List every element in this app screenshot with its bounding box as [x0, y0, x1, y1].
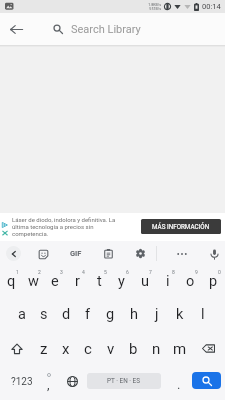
button[interactable]: s	[33, 299, 55, 332]
staticText: q	[7, 273, 16, 290]
button[interactable]: Change language	[60, 365, 85, 398]
button[interactable]: More options	[174, 246, 189, 261]
button[interactable]: Clipboard	[101, 246, 116, 261]
button[interactable]: z	[33, 332, 55, 365]
button[interactable]: k	[168, 299, 191, 332]
staticText: h	[130, 306, 138, 323]
staticText: i	[166, 273, 170, 290]
button[interactable]: h	[122, 299, 145, 332]
staticText: g	[106, 306, 115, 323]
button[interactable]: x	[55, 332, 77, 365]
staticText: Láser de diodo, indolora y definitiva. L…	[12, 216, 126, 237]
staticText: p	[209, 273, 218, 290]
staticText: b	[129, 340, 138, 358]
staticText: o	[186, 273, 195, 290]
staticText: a	[18, 306, 26, 323]
button[interactable]: 0	[202, 266, 225, 299]
button[interactable]: .	[166, 365, 192, 398]
button[interactable]: Search Library	[53, 13, 141, 45]
staticText: ?123	[11, 376, 33, 388]
staticText: MÁS INFORMACIÓN	[152, 223, 210, 230]
button[interactable]: Settings	[133, 246, 148, 261]
staticText: s	[40, 306, 48, 323]
button[interactable]: g	[99, 299, 122, 332]
staticText: j	[155, 306, 159, 323]
staticText: f	[85, 306, 91, 323]
staticText: 1.8KB/s 551B/s	[148, 3, 161, 11]
button[interactable]: 2	[22, 266, 44, 299]
button[interactable]: v	[99, 332, 122, 365]
staticText: PT · EN · ES	[107, 377, 141, 385]
button[interactable]: Search	[192, 372, 221, 389]
button[interactable]: PT · EN · ES	[87, 373, 161, 389]
button[interactable]: 1	[0, 266, 22, 299]
staticText: 6	[126, 269, 129, 275]
staticText: y	[118, 273, 125, 290]
staticText: d	[62, 306, 71, 323]
button[interactable]: Back	[6, 246, 21, 261]
button[interactable]: 6	[110, 266, 133, 299]
button[interactable]: Close ad	[1, 229, 9, 237]
button[interactable]: c	[77, 332, 99, 365]
button[interactable]: d	[55, 299, 77, 332]
staticText: e	[51, 273, 59, 290]
staticText: m	[173, 340, 187, 358]
staticText: v	[107, 340, 115, 358]
staticText: Search Library	[71, 23, 141, 36]
staticText: w	[28, 273, 39, 290]
button[interactable]: Stickers	[35, 246, 51, 262]
button[interactable]: Back	[0, 13, 32, 45]
button[interactable]: 5	[88, 266, 110, 299]
staticText: 4	[82, 269, 85, 275]
button[interactable]: 8	[156, 266, 179, 299]
button[interactable]: Shift	[0, 332, 33, 365]
button[interactable]: f	[77, 299, 99, 332]
staticText: 5	[104, 269, 107, 275]
button[interactable]: Ad choices	[1, 221, 9, 229]
staticText: n	[152, 340, 161, 358]
button[interactable]: m	[168, 332, 191, 365]
button[interactable]: 9	[179, 266, 202, 299]
staticText: r	[75, 273, 80, 290]
staticText: k	[176, 306, 184, 323]
staticText: 9	[195, 269, 198, 275]
button[interactable]: Voice input	[206, 246, 222, 262]
staticText: 7	[149, 269, 152, 275]
button[interactable]: GIF	[67, 245, 84, 262]
staticText: 2	[38, 269, 41, 275]
staticText: l	[201, 306, 205, 323]
button[interactable]: 3	[44, 266, 66, 299]
staticText: c	[84, 340, 92, 358]
staticText: z	[40, 340, 48, 358]
button[interactable]: b	[122, 332, 145, 365]
staticText: GIF	[70, 249, 82, 258]
staticText: u	[141, 273, 149, 290]
staticText: x	[62, 340, 70, 358]
staticText: .	[177, 377, 181, 392]
button[interactable]: MÁS INFORMACIÓN	[141, 219, 221, 234]
staticText: t	[97, 273, 102, 290]
button[interactable]: Backspace	[191, 332, 225, 365]
staticText: 1	[16, 269, 19, 275]
staticText: 3	[60, 269, 63, 275]
button[interactable]: n	[145, 332, 168, 365]
staticText: ,	[47, 377, 50, 392]
button[interactable]: ?123	[0, 365, 37, 398]
button[interactable]: a	[11, 299, 33, 332]
staticText: 8	[172, 269, 175, 275]
button[interactable]: j	[145, 299, 168, 332]
staticText: 00:14	[202, 2, 221, 11]
button[interactable]: 7	[133, 266, 156, 299]
button[interactable]: l	[191, 299, 214, 332]
button[interactable]: ,	[37, 365, 60, 398]
staticText: 0	[218, 269, 221, 275]
button[interactable]: 4	[66, 266, 88, 299]
